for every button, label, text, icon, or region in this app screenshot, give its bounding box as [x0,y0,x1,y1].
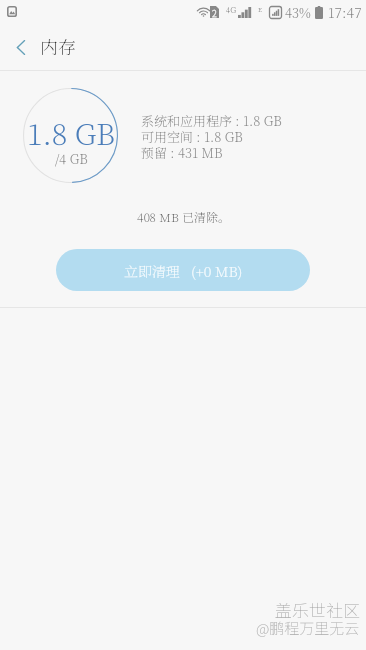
staticText: 立即清理 (+0 MB) [124,261,243,281]
staticText: 系统和应用程序 : 1.8 GB [141,111,282,130]
staticText: E [258,5,262,14]
staticText: @鹏程万里无云 [256,617,360,639]
staticText: /4 GB [55,149,88,168]
button[interactable]: Back [0,26,42,68]
staticText: 预留 : 431 MB [141,143,223,162]
staticText: 内存 [40,33,76,59]
staticText: 408 MB 已清除。 [137,208,230,225]
staticText: 43% [285,3,311,22]
staticText: 可用空间 : 1.8 GB [141,127,243,146]
staticText: 2 [212,7,217,19]
staticText: 4G [226,4,237,15]
staticText: 1.8 GB [27,112,116,154]
staticText: 盖乐世社区 [275,597,360,622]
button[interactable]: 立即清理 (+0 MB) [56,249,310,291]
staticText: 17:47 [328,2,362,22]
